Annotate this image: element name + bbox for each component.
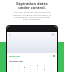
staticText: Scan your groceries once and the app rem… — [0, 11, 64, 21]
staticText: November 2024 — [9, 60, 23, 62]
staticText: Expiration dates under control. — [0, 1, 64, 10]
button[interactable]: Add item — [51, 33, 55, 36]
staticText: Expiring soon — [9, 55, 21, 57]
